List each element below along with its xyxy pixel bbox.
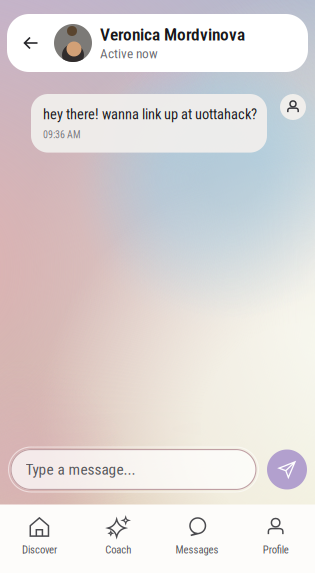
staticText: hey there! wanna link up at uottahack? (43, 106, 257, 123)
staticText: Active now (100, 46, 158, 61)
staticText: Messages (175, 543, 218, 556)
button[interactable]: Profile (236, 509, 315, 563)
staticText: Veronica Mordvinova (100, 24, 245, 45)
button[interactable]: Messages (157, 509, 236, 563)
staticText: Type a message... (25, 460, 135, 478)
button[interactable]: Coach (79, 509, 158, 563)
button[interactable]: Send (267, 449, 307, 489)
button[interactable]: Discover (0, 509, 79, 563)
staticText: Coach (105, 543, 131, 556)
button[interactable]: Type a message... (8, 446, 259, 492)
button[interactable]: Back (7, 18, 54, 68)
staticText: 09:36 AM (43, 129, 81, 141)
staticText: Discover (22, 543, 57, 556)
staticText: Profile (263, 543, 289, 556)
